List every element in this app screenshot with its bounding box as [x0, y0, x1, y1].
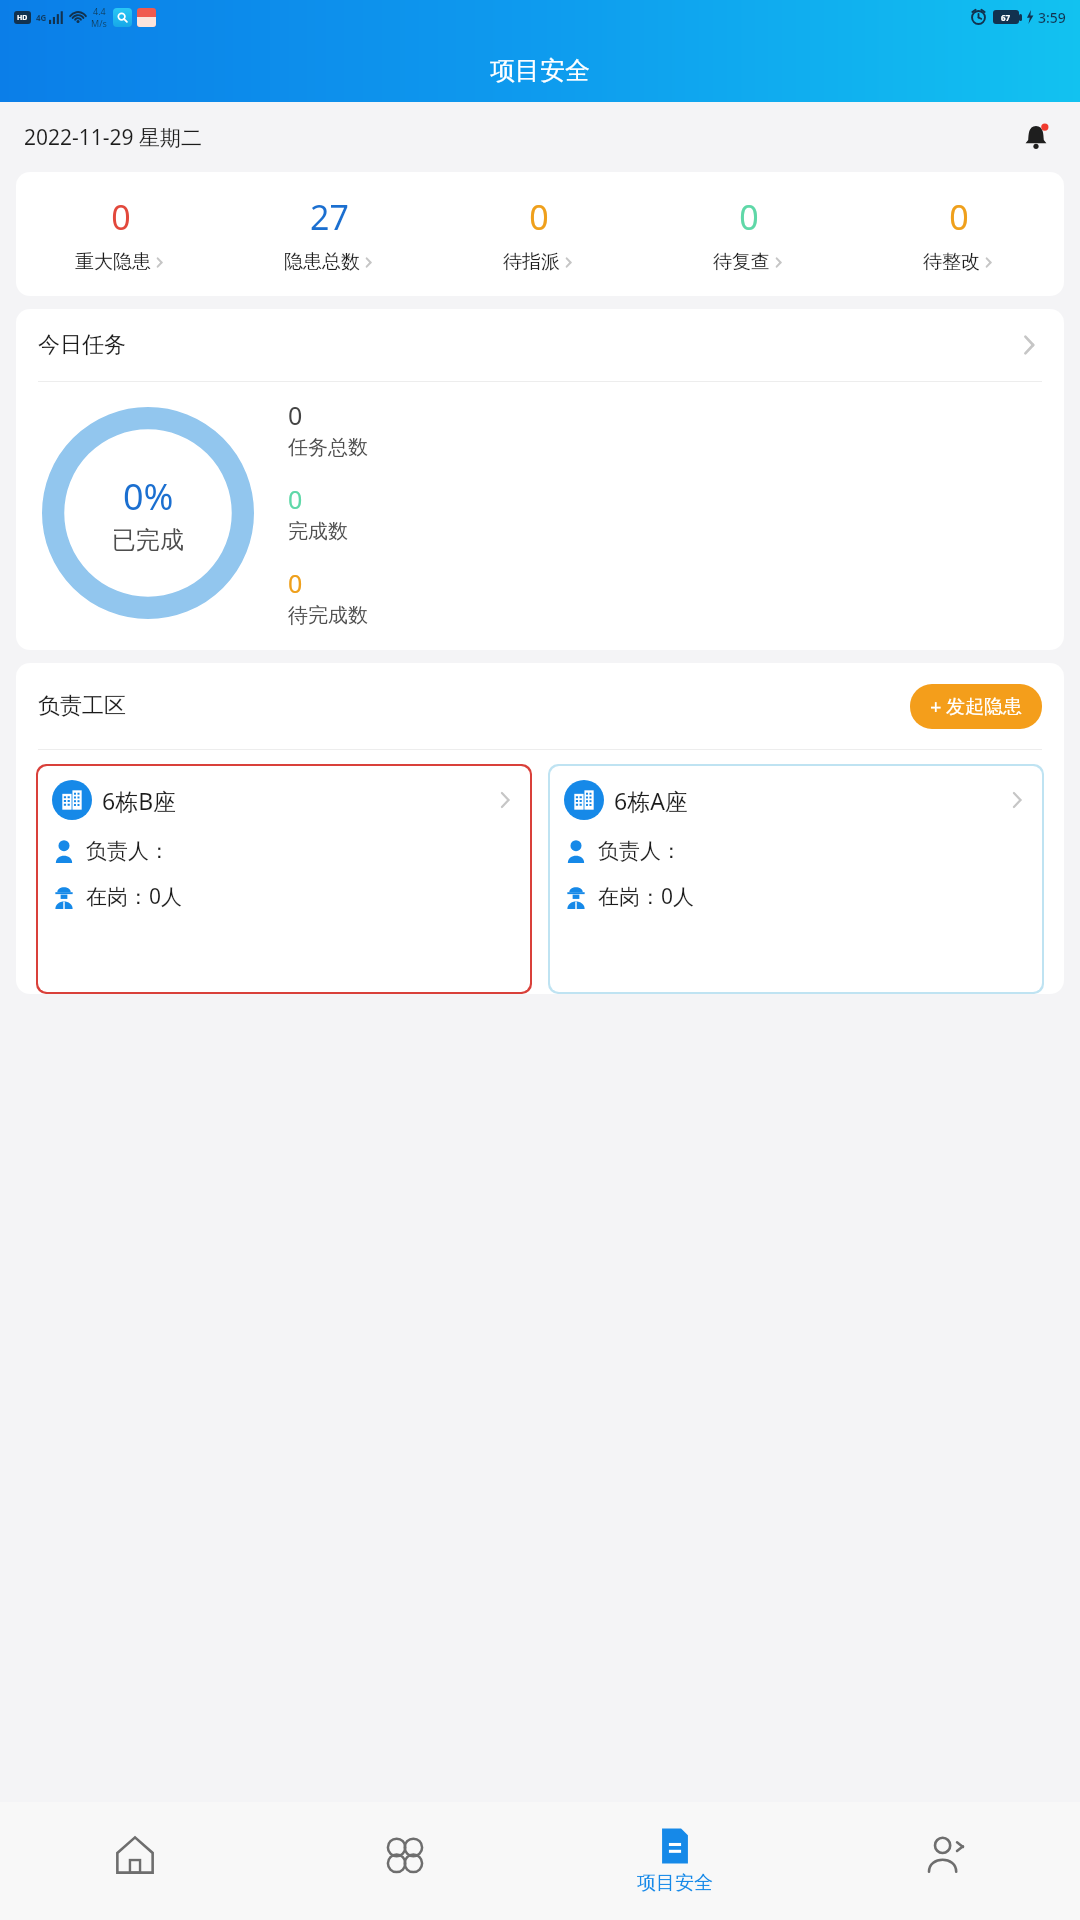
staticText: 在岗：0人: [86, 882, 183, 911]
staticText: 6栋B座: [102, 785, 177, 816]
staticText: 0: [111, 194, 131, 240]
staticText: 67: [1001, 12, 1011, 23]
staticText: 0%: [123, 472, 174, 521]
staticText: 0: [288, 482, 303, 516]
button[interactable]: 0: [434, 194, 644, 274]
staticText: 待指派: [503, 250, 560, 274]
staticText: 负责工区: [38, 692, 126, 720]
staticText: 0: [288, 398, 303, 432]
staticText: 项目安全: [490, 55, 590, 86]
button[interactable]: 今日任务: [16, 309, 1064, 381]
button[interactable]: 0: [854, 194, 1064, 274]
button[interactable]: 6栋A座: [550, 766, 1042, 992]
button[interactable]: 27: [225, 194, 434, 274]
staticText: 今日任务: [38, 331, 126, 359]
staticText: 隐患总数: [284, 250, 360, 274]
staticText: 0: [739, 194, 759, 240]
staticText: 3:59: [1038, 8, 1066, 27]
staticText: 待整改: [923, 250, 980, 274]
staticText: 任务总数: [288, 435, 368, 460]
button[interactable]: 应用: [270, 1802, 540, 1920]
staticText: 4G: [36, 12, 47, 23]
staticText: 已完成: [112, 525, 184, 555]
staticText: 2022-11-29 星期二: [24, 123, 203, 152]
staticText: 6栋A座: [614, 785, 688, 816]
staticText: HD: [17, 13, 28, 23]
staticText: M/s: [91, 17, 107, 29]
staticText: 负责人：: [598, 838, 682, 864]
staticText: +: [930, 693, 942, 720]
staticText: 0: [529, 194, 549, 240]
staticText: 4.4: [93, 5, 106, 17]
staticText: 完成数: [288, 519, 348, 544]
staticText: 负责人：: [86, 838, 170, 864]
button[interactable]: 0: [16, 194, 225, 274]
staticText: 重大隐患: [75, 250, 151, 274]
staticText: 发起隐患: [946, 695, 1022, 719]
staticText: 项目安全: [637, 1871, 713, 1895]
staticText: 27: [310, 194, 349, 240]
button[interactable]: 6栋B座: [38, 766, 530, 992]
staticText: 0: [288, 566, 303, 600]
button[interactable]: 我的: [810, 1802, 1080, 1920]
button[interactable]: 首页: [0, 1802, 270, 1920]
staticText: 待复查: [713, 250, 770, 274]
button[interactable]: 0: [644, 194, 854, 274]
staticText: 在岗：0人: [598, 882, 695, 911]
staticText: 0: [949, 194, 969, 240]
staticText: 待完成数: [288, 603, 368, 628]
button[interactable]: 项目安全: [540, 1802, 810, 1920]
button[interactable]: 通知: [1016, 117, 1056, 157]
button[interactable]: +: [910, 684, 1042, 729]
